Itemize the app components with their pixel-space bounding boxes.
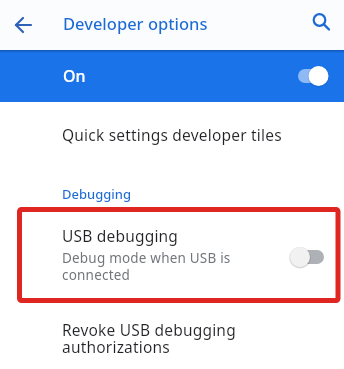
button[interactable]: [302, 3, 340, 41]
button[interactable]: Revoke USB debugging authorizations: [0, 312, 344, 369]
staticText: Revoke USB debugging authorizations: [62, 319, 236, 357]
button[interactable]: [4, 5, 42, 43]
staticText: USB debugging: [62, 225, 179, 246]
staticText: Debugging: [62, 185, 132, 203]
button[interactable]: On: [0, 50, 344, 102]
button[interactable]: Quick settings developer tiles: [0, 110, 344, 158]
button[interactable]: USB debugging: [0, 210, 344, 302]
staticText: Quick settings developer tiles: [62, 124, 282, 145]
staticText: On: [63, 65, 86, 87]
staticText: Developer options: [63, 12, 208, 34]
staticText: Debug mode when USB is connected: [62, 249, 231, 284]
